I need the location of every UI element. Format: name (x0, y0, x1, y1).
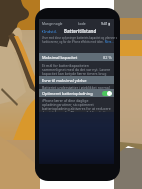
staticText: 9:41 ▮ (101, 21, 111, 25)
staticText: Maksimal kapacitet (42, 55, 78, 60)
button[interactable]: Optimeret batteriopladning (102, 91, 112, 96)
button[interactable]: Evne til maksimal ydelse (39, 76, 114, 84)
staticText: Mange nogle (42, 21, 63, 25)
staticText: Evne til maksimal ydelse (42, 78, 87, 83)
staticText: iPhone lærer af dine daglige opladningsr… (42, 98, 111, 115)
staticText: 82 % (103, 55, 112, 60)
staticText: funktionerne, og får din iPhone effektiv… (42, 40, 105, 44)
staticText: Batteriet understøtter i øjeblikket norm… (42, 85, 111, 94)
staticText: Batteritilstand (64, 28, 97, 34)
staticText: Et mål for batterikapaciteten sammenlign… (42, 63, 111, 80)
button[interactable]: Optimeret batteriopladning (39, 89, 114, 97)
staticText: kode (78, 21, 86, 25)
staticText: Viser med disse oplysninger batteriets k… (42, 36, 117, 40)
staticText: Indstil. (44, 29, 57, 34)
button[interactable]: Mere... (105, 40, 114, 44)
button[interactable]: Indstil. (40, 28, 58, 35)
button[interactable]: Maksimal kapacitet (39, 53, 114, 61)
staticText: Optimeret batteriopladning (42, 91, 93, 96)
